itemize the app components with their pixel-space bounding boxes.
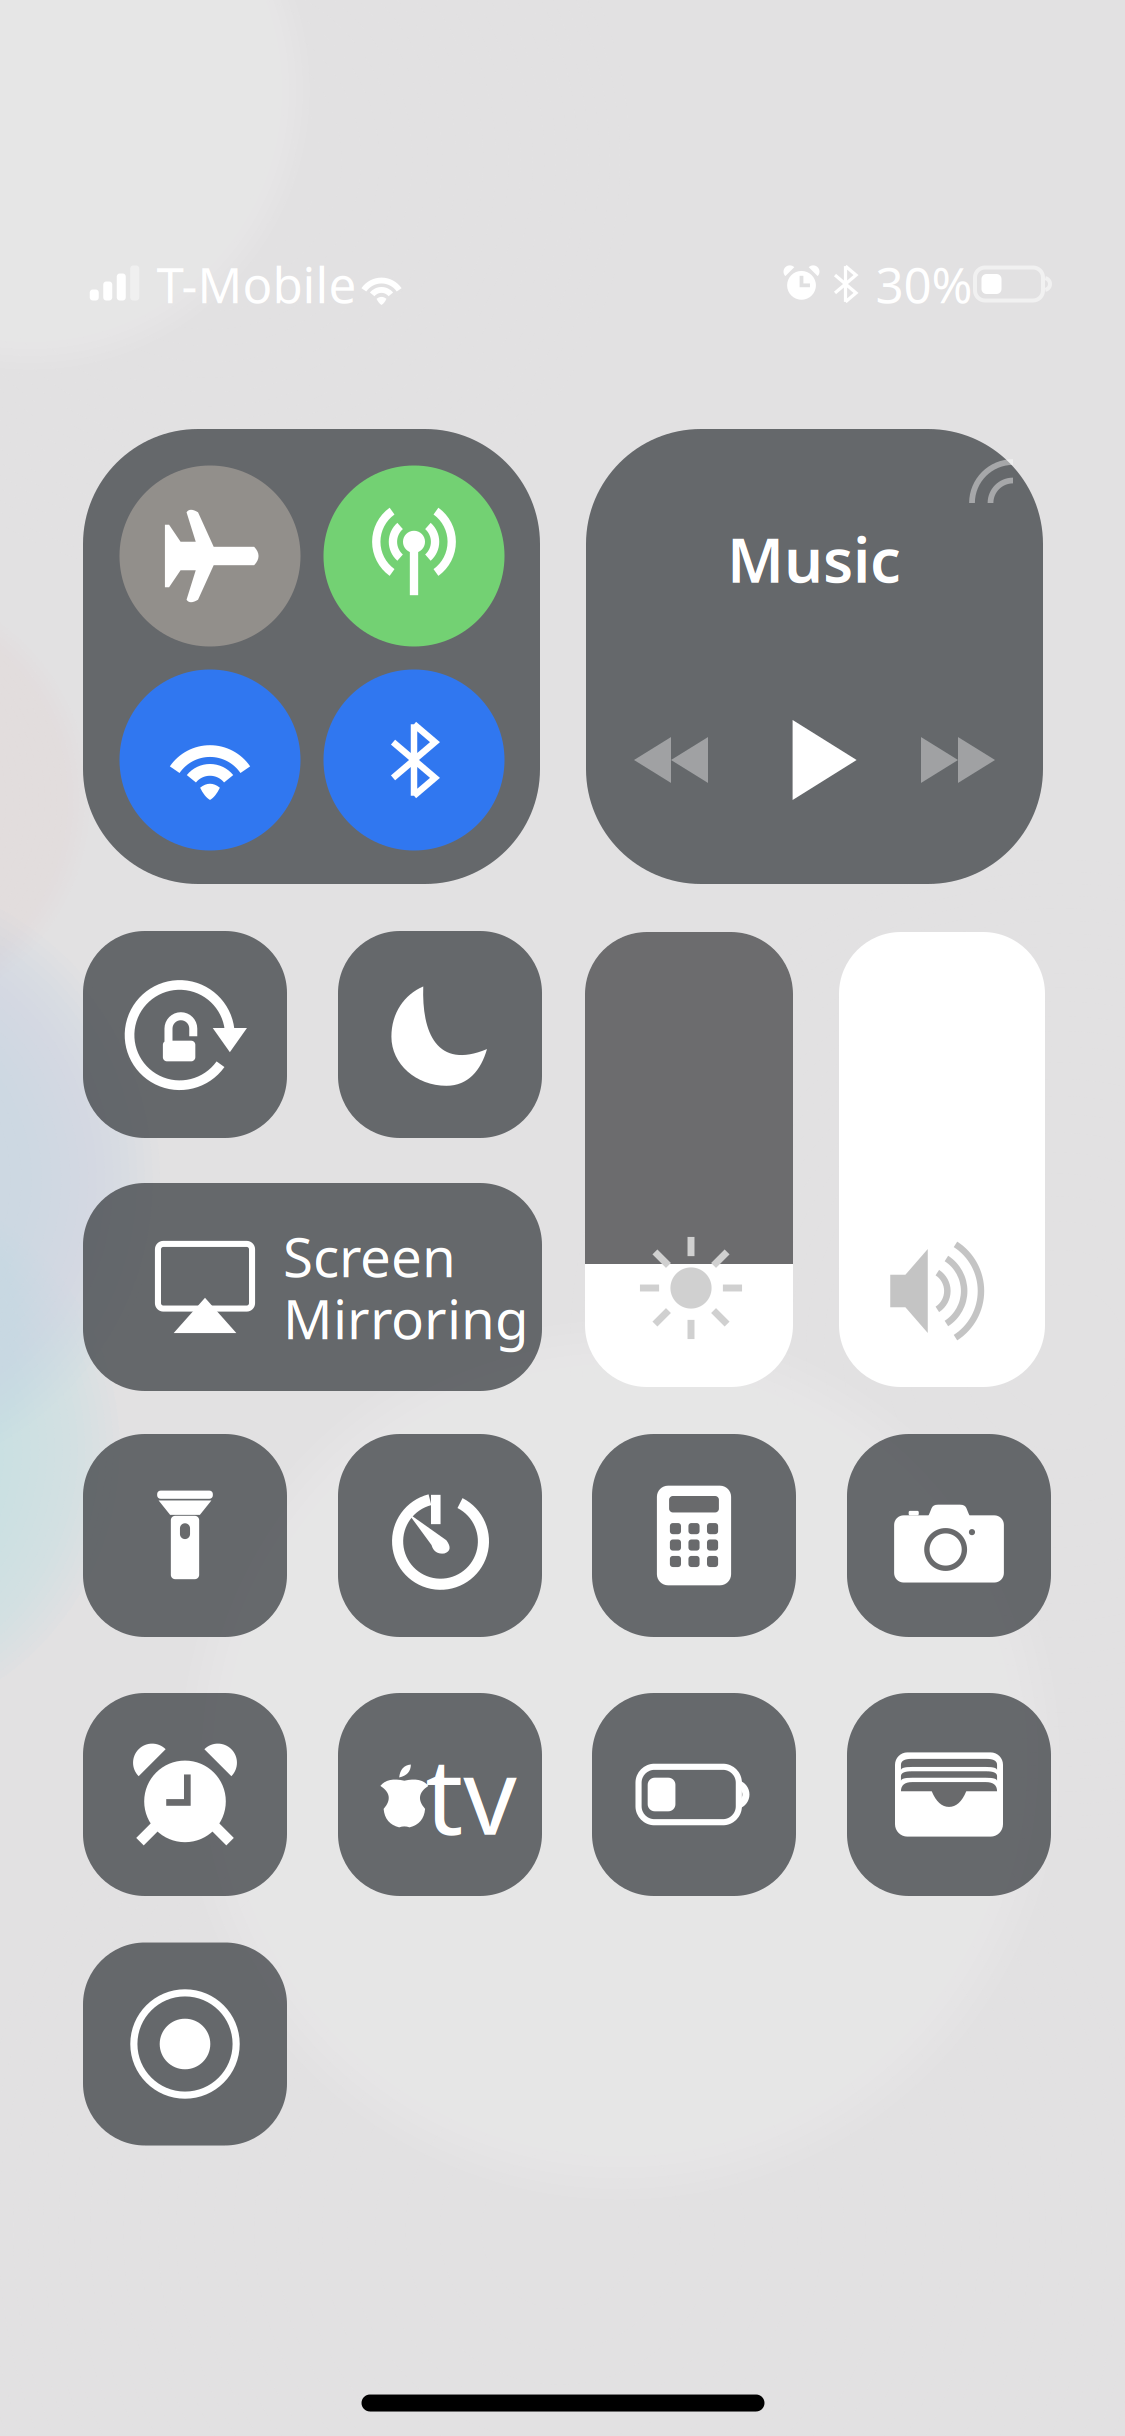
button[interactable]: Cellular Data (323, 465, 504, 646)
button[interactable]: Camera (847, 1434, 1051, 1637)
button[interactable]: Apple TV Remote (338, 1693, 542, 1896)
staticText: Mirroring (283, 1282, 529, 1354)
button[interactable]: Screen Mirroring (83, 1183, 542, 1391)
button[interactable]: Calculator (592, 1434, 796, 1637)
button[interactable]: Low Power Mode (592, 1693, 796, 1896)
button[interactable]: Alarm (83, 1693, 287, 1896)
button[interactable]: Portrait Orientation Lock (83, 931, 287, 1138)
button[interactable]: Screen Recording (83, 1942, 287, 2145)
button[interactable]: Do Not Disturb (338, 931, 542, 1138)
button[interactable]: Bluetooth (323, 669, 504, 850)
button[interactable]: Timer (338, 1434, 542, 1637)
button[interactable]: Wi-Fi (119, 669, 300, 850)
button[interactable]: Volume (839, 932, 1045, 1387)
button[interactable]: Wallet (847, 1693, 1051, 1896)
staticText: 30% (875, 251, 972, 317)
staticText: T-Mobile (156, 251, 356, 317)
button[interactable]: Now Playing — Music (586, 429, 1043, 884)
staticText: Music (727, 518, 901, 600)
staticText: Screen (283, 1220, 456, 1292)
staticText: tv (425, 1724, 517, 1864)
button[interactable]: Airplane Mode (119, 465, 300, 646)
button[interactable]: Brightness (585, 932, 793, 1387)
button[interactable]: Flashlight (83, 1434, 287, 1637)
